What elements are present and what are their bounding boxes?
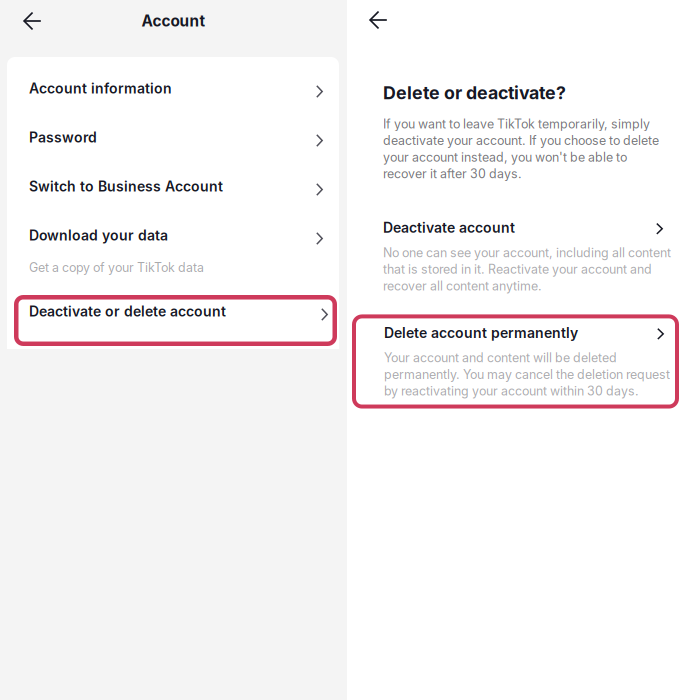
button[interactable]: Download your data xyxy=(7,211,339,282)
button[interactable]: Deactivate or delete account xyxy=(14,295,337,346)
staticText: Switch to Business Account xyxy=(29,178,223,195)
staticText: Password xyxy=(29,129,97,146)
staticText: If you want to leave TikTok temporarily,… xyxy=(383,116,659,181)
staticText: Account xyxy=(141,12,205,30)
button[interactable]: Account information xyxy=(7,64,339,113)
staticText: Download your data xyxy=(29,227,168,244)
staticText: Get a copy of your TikTok data xyxy=(29,260,204,275)
button[interactable]: Delete account permanently xyxy=(354,316,677,406)
button[interactable]: Back xyxy=(14,3,50,39)
button[interactable]: Back xyxy=(360,2,396,38)
staticText: Deactivate account xyxy=(383,219,515,236)
staticText: Delete or deactivate? xyxy=(383,82,566,103)
button[interactable]: Password xyxy=(7,113,339,162)
staticText: Account information xyxy=(29,80,172,97)
button[interactable]: Switch to Business Account xyxy=(7,162,339,211)
staticText: Delete account permanently xyxy=(384,324,578,341)
staticText: No one can see your account, including a… xyxy=(383,245,671,293)
staticText: Deactivate or delete account xyxy=(29,303,226,320)
staticText: Your account and content will be deleted… xyxy=(384,350,670,399)
button[interactable]: Deactivate account xyxy=(347,219,700,293)
